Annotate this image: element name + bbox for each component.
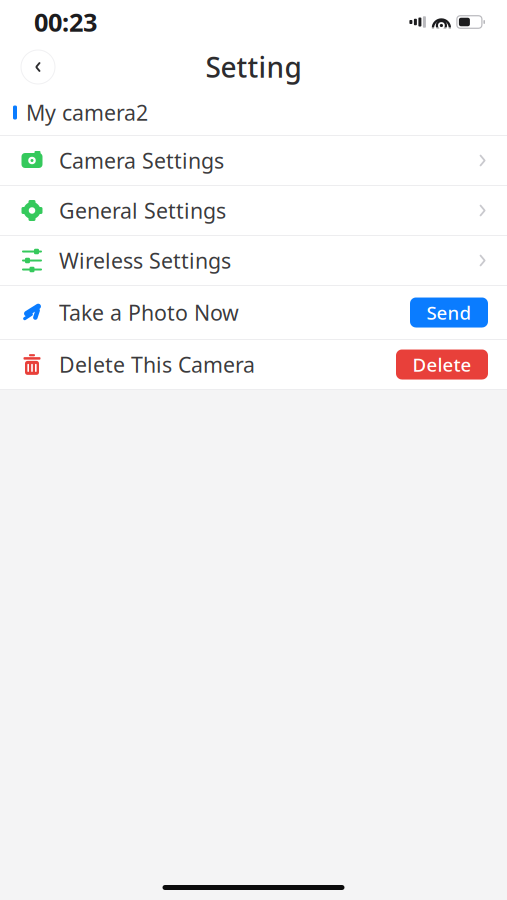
button[interactable]: Back — [21, 50, 55, 84]
staticText: General Settings — [59, 196, 226, 225]
button[interactable]: Delete — [396, 349, 488, 379]
staticText: My camera2 — [26, 98, 148, 127]
staticText: 00:23 — [34, 5, 97, 39]
staticText: Setting — [205, 48, 301, 86]
button[interactable]: Send — [410, 297, 488, 327]
staticText: Camera Settings — [59, 146, 224, 175]
staticText: Send — [426, 300, 471, 325]
staticText: Take a Photo Now — [59, 298, 239, 327]
staticText: Wireless Settings — [59, 246, 231, 275]
staticText: Delete This Camera — [59, 350, 255, 379]
button[interactable]: General Settings — [0, 186, 507, 236]
button[interactable]: Wireless Settings — [0, 236, 507, 286]
button[interactable]: Camera Settings — [0, 136, 507, 186]
staticText: Delete — [412, 352, 471, 377]
